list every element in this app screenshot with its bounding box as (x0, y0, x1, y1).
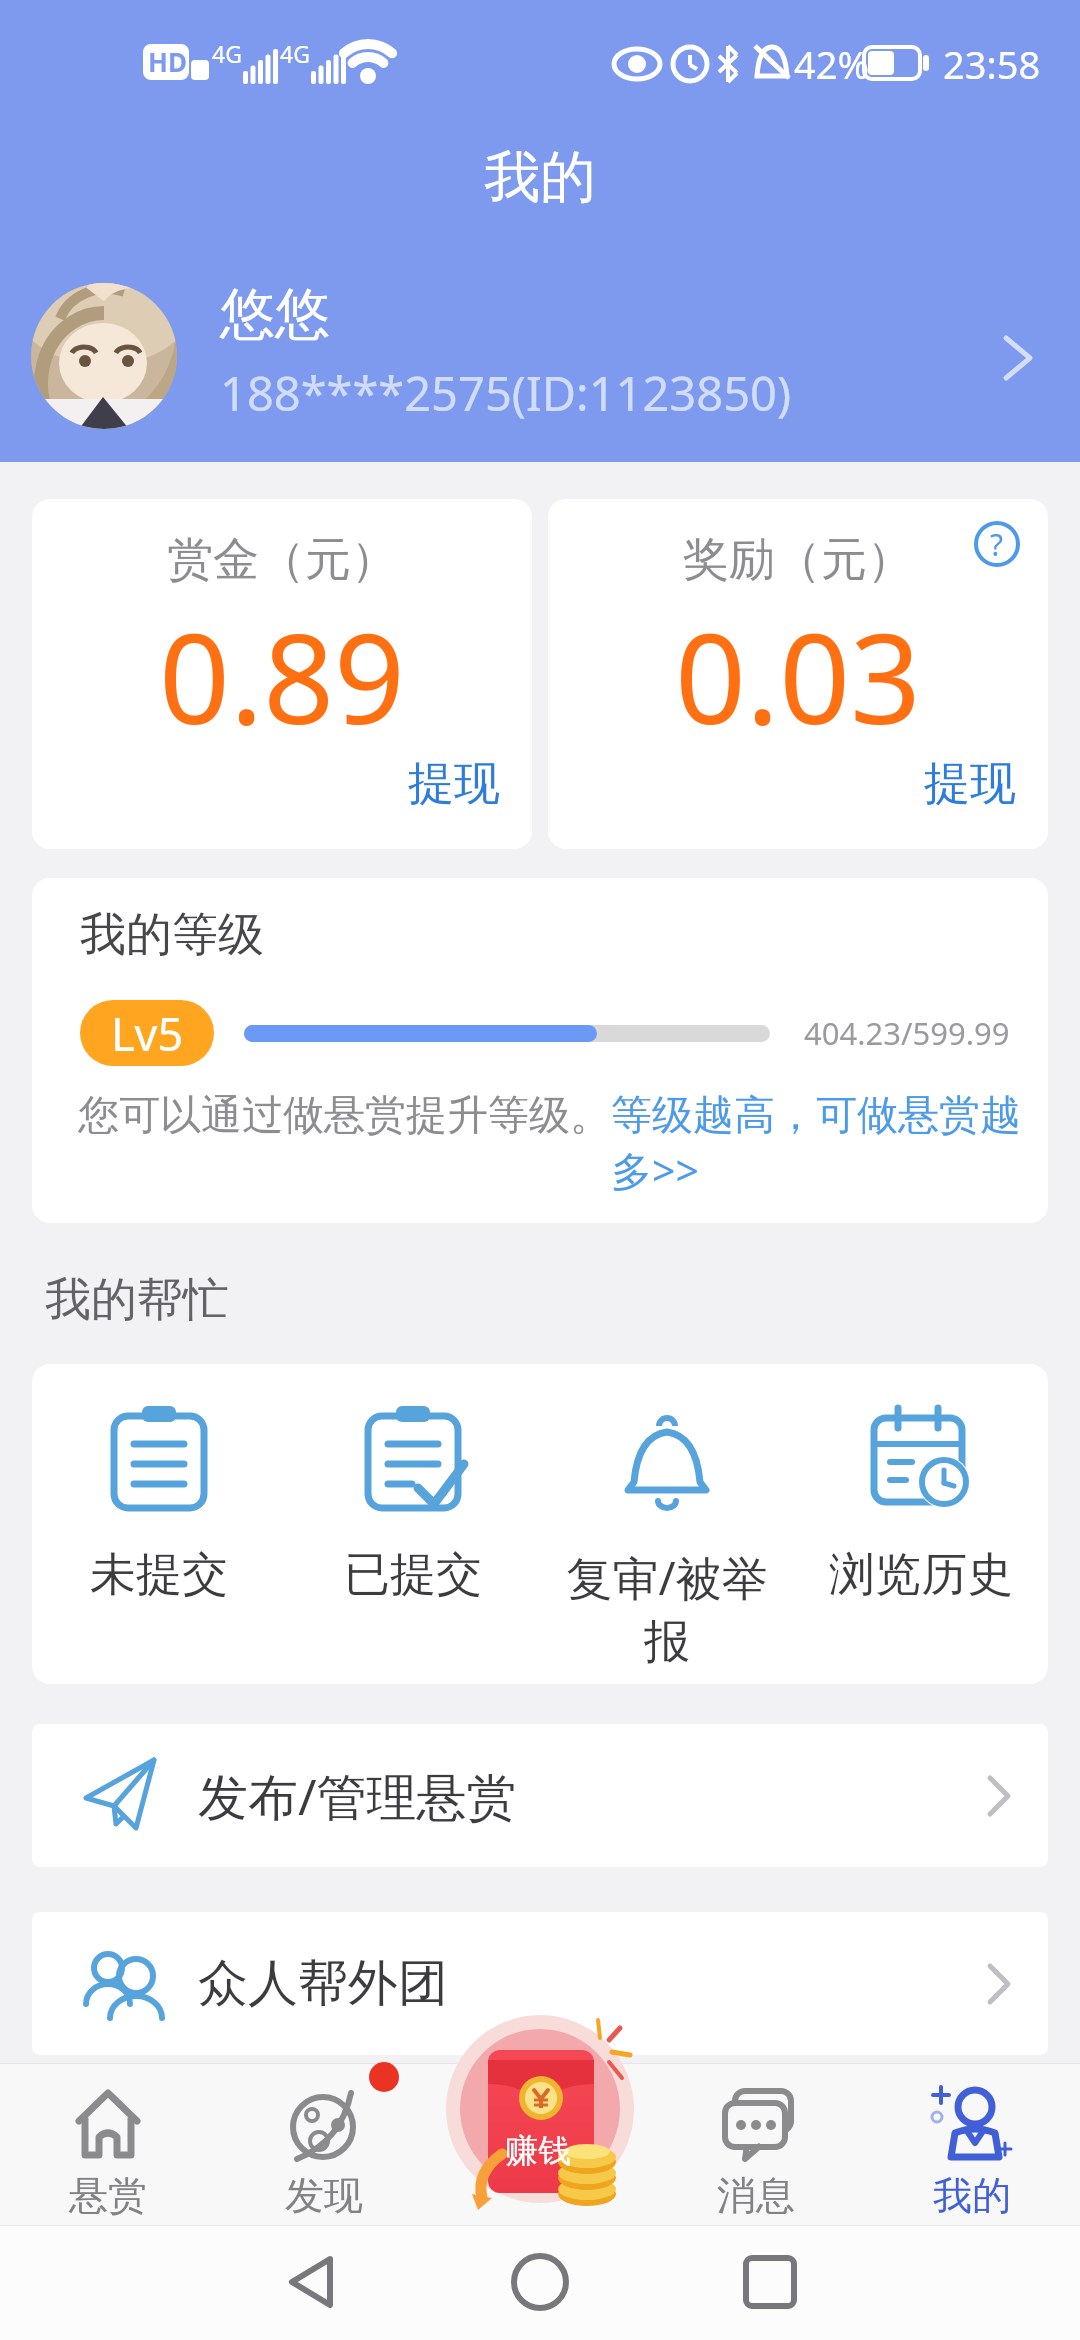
staticText: 404.23/599.99 (804, 1012, 1010, 1054)
staticText: 42% (794, 38, 870, 90)
button[interactable]: 赏金（元） (32, 499, 532, 849)
staticText: 等级越高，可做悬赏越 (611, 1090, 1021, 1142)
button[interactable]: 众人帮外团 (32, 1912, 1048, 2055)
staticText: 4G (280, 38, 310, 69)
staticText: 浏览历史 (829, 1546, 1013, 1604)
button[interactable]: 已提交 (286, 1364, 540, 1684)
button[interactable]: 复审/被举 报 (540, 1364, 794, 1684)
staticText: 我的 (933, 2171, 1011, 2220)
button[interactable]: 悬赏 (0, 2063, 216, 2225)
staticText: 悠悠 (220, 280, 330, 349)
staticText: 发布/管理悬赏 (198, 1762, 517, 1830)
button[interactable]: ? (974, 521, 1020, 567)
button[interactable]: 发现 (216, 2063, 432, 2225)
staticText: 我的等级 (80, 906, 264, 964)
staticText: 我的帮忙 (45, 1271, 229, 1329)
button[interactable]: 奖励（元） (548, 499, 1048, 849)
staticText: 赚钱 (505, 2130, 571, 2172)
button[interactable] (432, 2063, 648, 2225)
button[interactable]: 未提交 (32, 1364, 286, 1684)
button[interactable]: 消息 (648, 2063, 864, 2225)
button[interactable]: 我的 (864, 2063, 1080, 2225)
staticText: Lv5 (111, 1003, 184, 1064)
button[interactable]: 提现 (924, 755, 1016, 813)
staticText: HD (148, 44, 187, 79)
staticText: 多>> (611, 1142, 699, 1198)
button[interactable] (31, 283, 177, 429)
staticText: 奖励（元） (683, 531, 913, 589)
staticText: 消息 (717, 2171, 795, 2220)
staticText: 23:58 (943, 38, 1041, 90)
staticText: 4G (212, 38, 242, 69)
staticText: 我的 (484, 142, 596, 213)
staticText: 0.89 (159, 591, 406, 760)
staticText: 发现 (285, 2171, 363, 2220)
button[interactable]: 悠悠 (220, 280, 792, 425)
staticText: 您可以通过做悬赏提升等级。 (78, 1090, 611, 1142)
staticText: 未提交 (90, 1546, 228, 1604)
staticText: 已提交 (344, 1546, 482, 1604)
button[interactable]: 提现 (408, 755, 500, 813)
staticText: 众人帮外团 (198, 1952, 448, 2015)
button[interactable]: 发布/管理悬赏 (32, 1724, 1048, 1867)
staticText: 188****2575(ID:1123850) (220, 361, 792, 425)
button[interactable]: 赚钱 (430, 2010, 650, 2220)
button[interactable]: 浏览历史 (794, 1364, 1048, 1684)
staticText: 赏金（元） (167, 531, 397, 589)
staticText: ? (990, 524, 1004, 565)
button[interactable]: 等级越高，可做悬赏越 (611, 1090, 1021, 1198)
staticText: 悬赏 (69, 2171, 147, 2220)
staticText: 0.03 (675, 591, 922, 760)
staticText: 复审/被举 报 (566, 1546, 768, 1671)
